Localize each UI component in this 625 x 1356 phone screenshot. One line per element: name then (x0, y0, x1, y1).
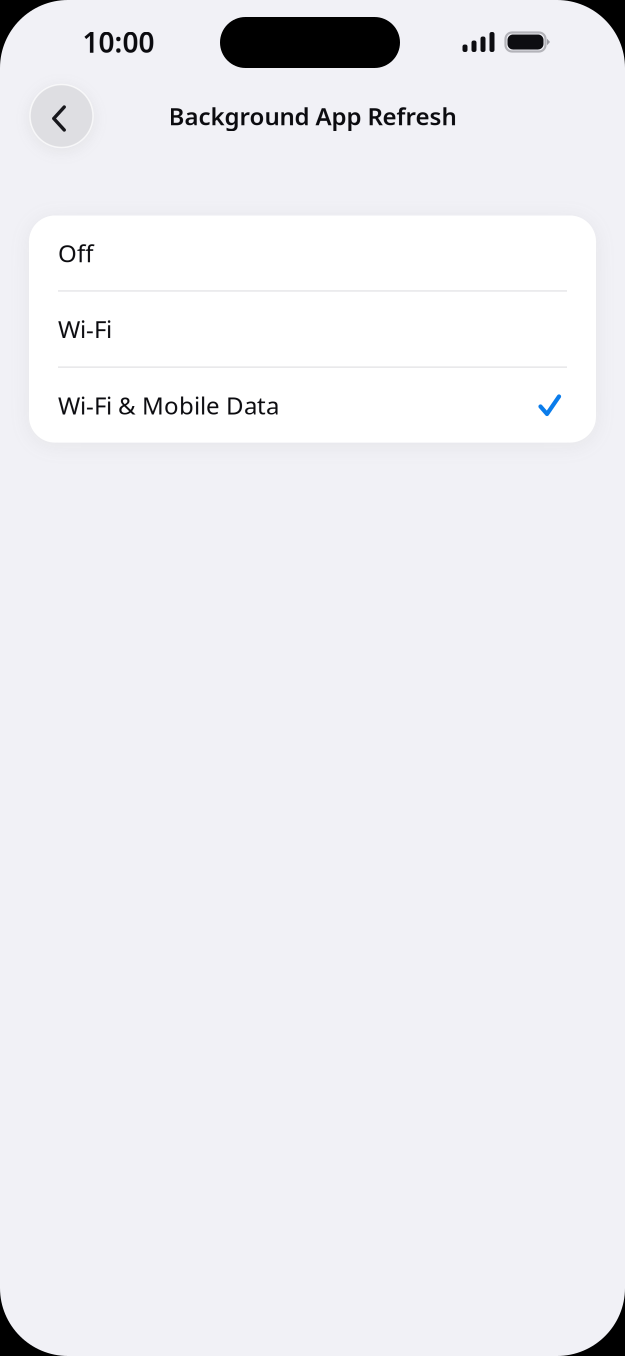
button[interactable]: Wi-Fi (29, 292, 596, 366)
staticText: Off (58, 237, 94, 269)
button[interactable]: Off (29, 215, 596, 290)
staticText: Wi-Fi & Mobile Data (58, 389, 279, 421)
staticText: 10:00 (82, 23, 154, 61)
staticText: Background App Refresh (168, 100, 456, 132)
button[interactable]: Wi-Fi & Mobile Data (29, 368, 596, 443)
staticText: Wi-Fi (58, 313, 112, 345)
button[interactable]: Back (30, 84, 93, 147)
